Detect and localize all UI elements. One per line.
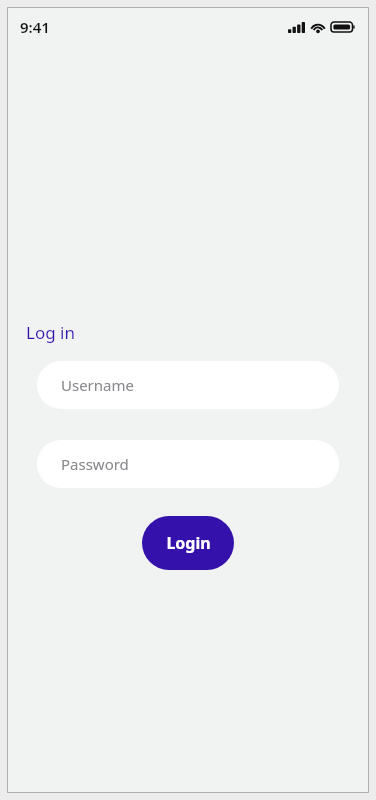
staticText: Login	[166, 532, 211, 554]
staticText: Password	[61, 454, 129, 474]
button[interactable]: Username	[37, 361, 339, 409]
button[interactable]: Login	[142, 516, 234, 570]
staticText: Log in	[26, 321, 75, 344]
staticText: Username	[61, 375, 134, 395]
staticText: 9:41	[20, 17, 50, 37]
button[interactable]: Password	[37, 440, 339, 488]
